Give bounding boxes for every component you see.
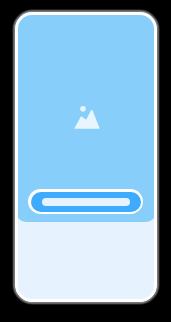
other: Image placeholder (74, 101, 100, 129)
button[interactable]: Media card (15, 12, 157, 302)
button[interactable] (28, 189, 143, 214)
